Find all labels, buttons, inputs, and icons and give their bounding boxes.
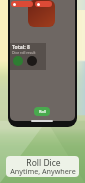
- staticText: Roll Dice: [26, 157, 61, 169]
- button[interactable]: Roll Dice: [6, 156, 79, 177]
- button[interactable]: [13, 1, 31, 7]
- staticText: Total: 8: [12, 44, 30, 51]
- staticText: Roll: [39, 109, 46, 114]
- staticText: Anytime, Anywhere: [10, 166, 76, 176]
- button[interactable]: Roll: [34, 107, 50, 116]
- staticText: Dice roll result: [12, 50, 36, 55]
- button[interactable]: [37, 1, 50, 7]
